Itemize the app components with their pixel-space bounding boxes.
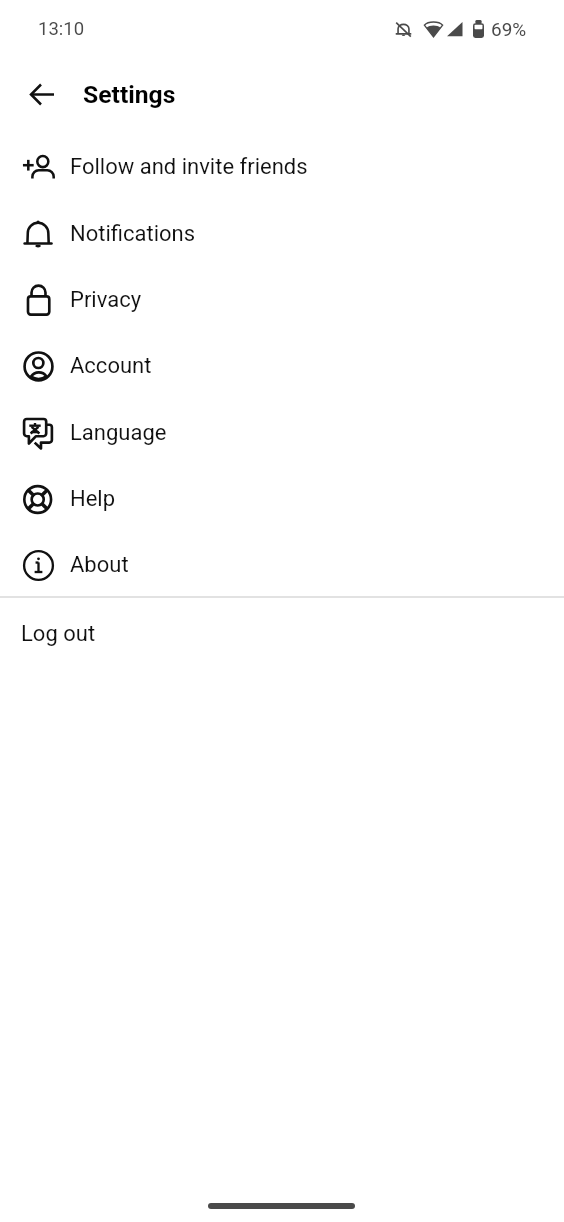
button[interactable]: Follow and invite friends	[0, 134, 564, 200]
staticText: Language	[70, 420, 167, 446]
staticText: Account	[70, 353, 152, 379]
button[interactable]: Help	[0, 466, 564, 532]
staticText: Follow and invite friends	[70, 154, 308, 180]
staticText: Help	[70, 486, 116, 512]
staticText: About	[70, 552, 129, 578]
button[interactable]: Notifications	[0, 201, 564, 267]
staticText: Privacy	[70, 287, 142, 313]
staticText: Notifications	[70, 221, 196, 247]
button[interactable]: About	[0, 532, 564, 598]
staticText: Log out	[21, 621, 96, 647]
button[interactable]: Log out	[0, 600, 564, 668]
button[interactable]: Back	[18, 70, 66, 118]
button[interactable]: Account	[0, 333, 564, 399]
button[interactable]: Privacy	[0, 267, 564, 333]
staticText: Settings	[83, 80, 176, 109]
staticText: 13:10	[38, 18, 85, 40]
staticText: 69%	[491, 18, 527, 40]
button[interactable]: Language	[0, 400, 564, 466]
